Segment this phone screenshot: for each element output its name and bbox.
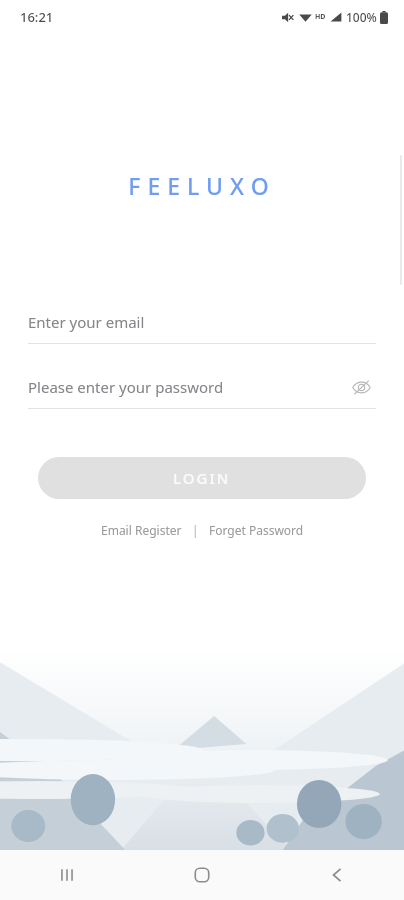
staticText: HD	[315, 12, 326, 22]
staticText: Please enter your password	[28, 377, 224, 397]
button[interactable]: Show password	[346, 372, 376, 402]
button[interactable]: Please enter your password	[28, 365, 376, 409]
staticText: Enter your email	[28, 312, 145, 332]
button[interactable]: Back	[269, 850, 404, 900]
button[interactable]: Email Register	[95, 518, 188, 542]
staticText: Email Register	[101, 522, 182, 538]
staticText: |	[192, 522, 199, 538]
staticText: LOGIN	[173, 468, 231, 488]
button[interactable]: LOGIN	[38, 457, 366, 499]
button[interactable]: Home	[134, 850, 269, 900]
staticText: 100%	[346, 9, 377, 25]
staticText: Forget Password	[209, 522, 304, 538]
staticText: FEELUXO	[128, 170, 276, 201]
button[interactable]: Forget Password	[203, 518, 310, 542]
button[interactable]: Recent apps	[0, 850, 134, 900]
button[interactable]: Enter your email	[28, 300, 376, 344]
staticText: 16:21	[20, 8, 54, 26]
